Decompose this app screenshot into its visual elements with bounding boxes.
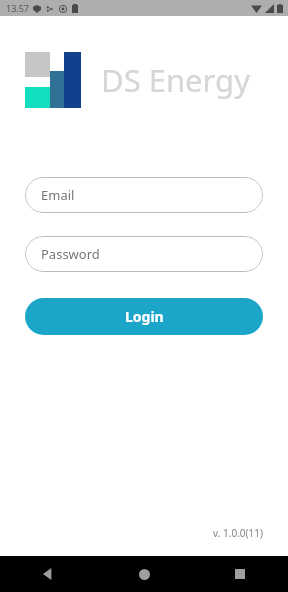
staticText: 13.57 xyxy=(6,2,30,14)
staticText: Email xyxy=(41,186,75,204)
button[interactable]: Back xyxy=(0,556,96,592)
button[interactable]: Email xyxy=(25,177,263,213)
staticText: Password xyxy=(41,245,100,263)
staticText: v. 1.0.0(11) xyxy=(213,526,263,540)
button[interactable]: Recents xyxy=(192,556,288,592)
button[interactable]: Home xyxy=(96,556,192,592)
button[interactable]: Login xyxy=(25,298,263,335)
button[interactable]: Password xyxy=(25,236,263,272)
staticText: DS Energy xyxy=(101,59,250,101)
staticText: Login xyxy=(125,307,164,326)
